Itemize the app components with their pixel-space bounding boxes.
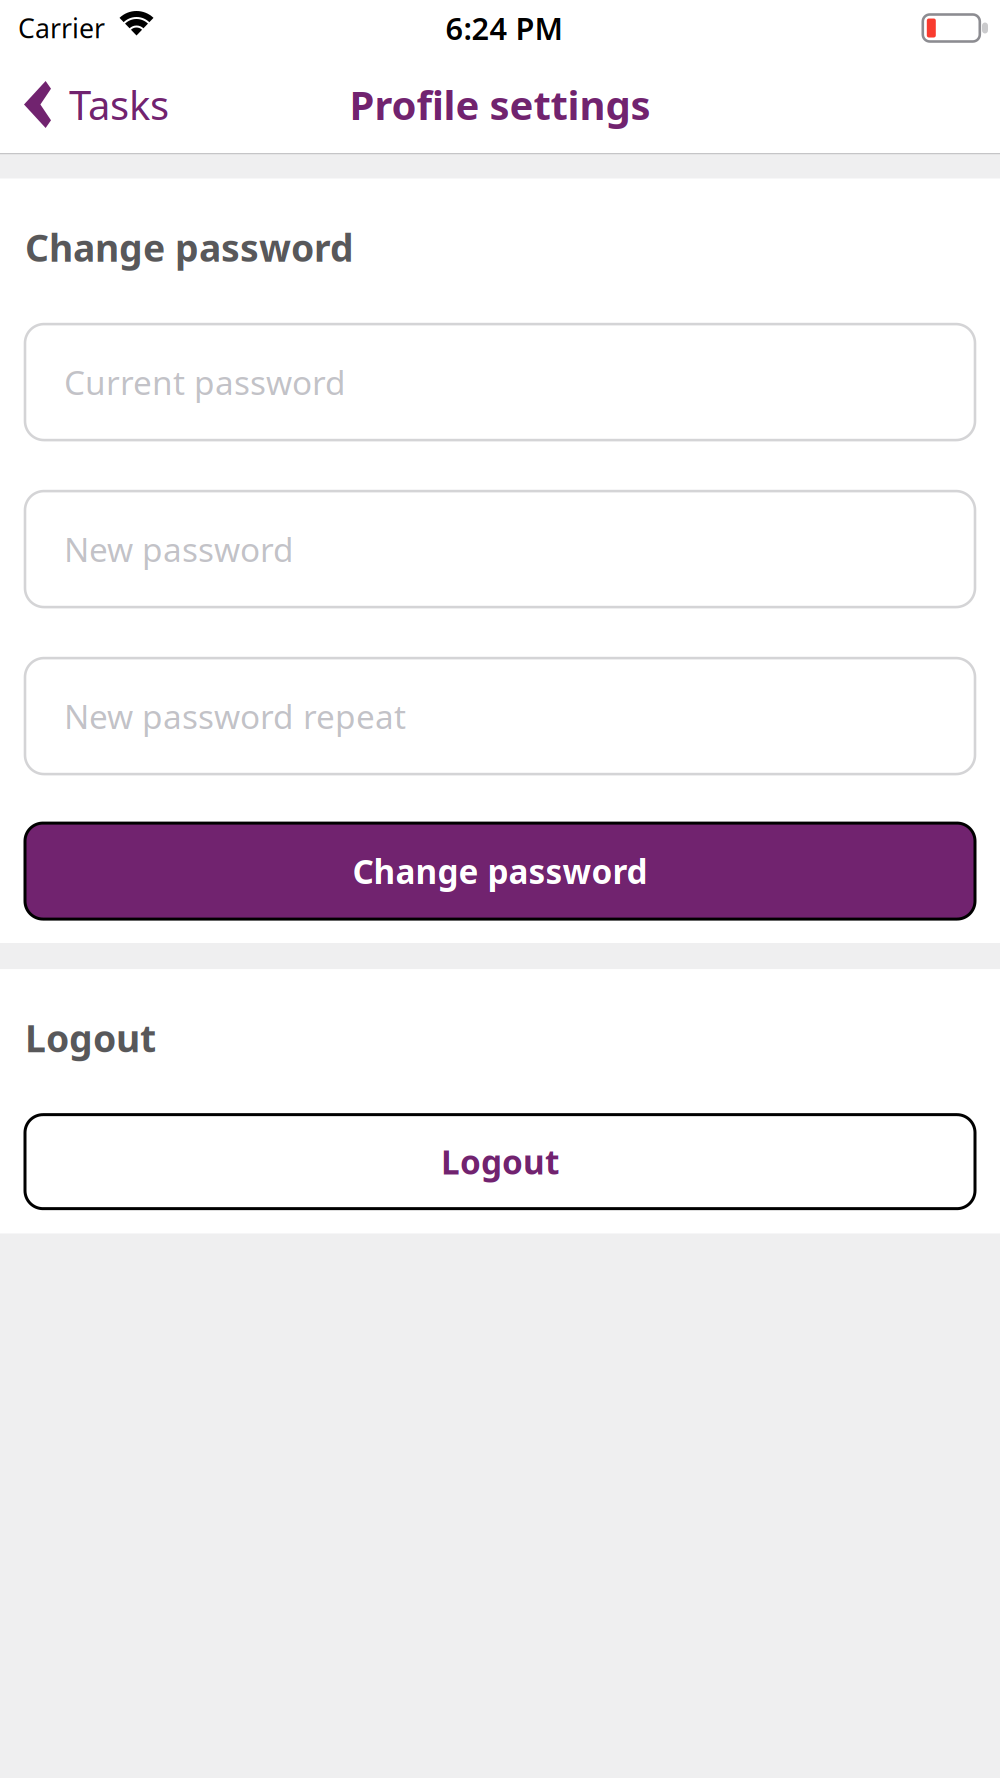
staticText: Tasks [69,78,169,131]
button[interactable]: Tasks [0,66,169,143]
staticText: 6:24 PM [445,8,562,48]
staticText: New password [64,527,294,571]
staticText: Change password [25,222,354,272]
staticText: New password repeat [64,694,406,738]
button[interactable]: Logout [25,1115,975,1209]
staticText: Logout [441,1139,559,1184]
button[interactable]: Change password [25,823,975,919]
staticText: Logout [25,1013,156,1063]
staticText: Current password [64,360,346,404]
staticText: Carrier [18,10,105,46]
staticText: Profile settings [349,78,650,131]
staticText: Change password [352,849,647,893]
